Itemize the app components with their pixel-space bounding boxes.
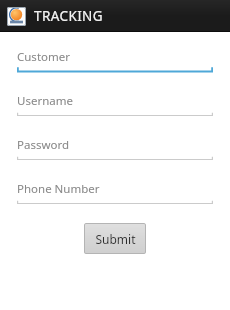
staticText: Password bbox=[17, 137, 70, 153]
button[interactable]: Password bbox=[17, 132, 213, 163]
button[interactable]: App icon bbox=[6, 6, 27, 27]
staticText: Phone Number bbox=[17, 181, 100, 197]
button[interactable]: Submit bbox=[84, 223, 146, 254]
staticText: TRACKING bbox=[34, 7, 104, 25]
staticText: Username bbox=[17, 93, 73, 109]
button[interactable]: Username bbox=[17, 88, 213, 119]
staticText: Submit bbox=[95, 231, 136, 247]
staticText: Customer bbox=[17, 49, 70, 65]
button[interactable]: Phone Number bbox=[17, 176, 213, 207]
button[interactable]: Customer bbox=[17, 44, 213, 75]
